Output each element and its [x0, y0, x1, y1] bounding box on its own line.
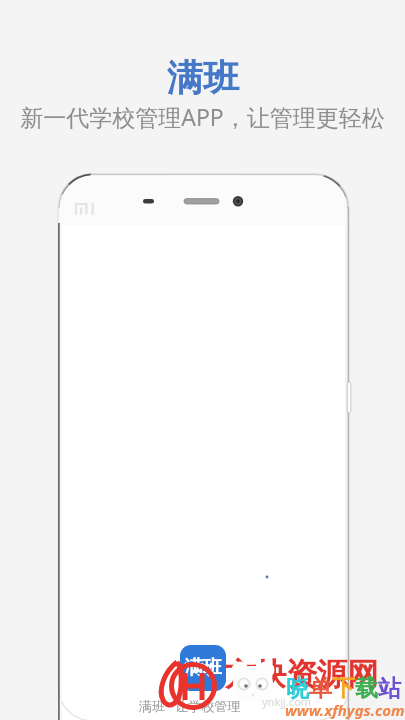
staticText: 新一代学校管理APP，让管理更轻松 [20, 101, 385, 132]
staticText: 晓 [286, 674, 309, 703]
staticText: www.xfhygs.com [285, 700, 405, 720]
staticText: ynkjj.com [262, 694, 312, 709]
staticText: 满班 [184, 656, 222, 680]
staticText: 单 [309, 674, 332, 703]
staticText: 站 [378, 674, 401, 703]
staticText: 方块资源网 [225, 655, 378, 694]
staticText: 载 [355, 674, 378, 703]
staticText: 满班 [167, 55, 239, 100]
staticText: 满班 让学校管理 [139, 697, 241, 715]
button[interactable]: 满班 app icon [180, 645, 226, 691]
staticText: 下 [332, 674, 355, 703]
